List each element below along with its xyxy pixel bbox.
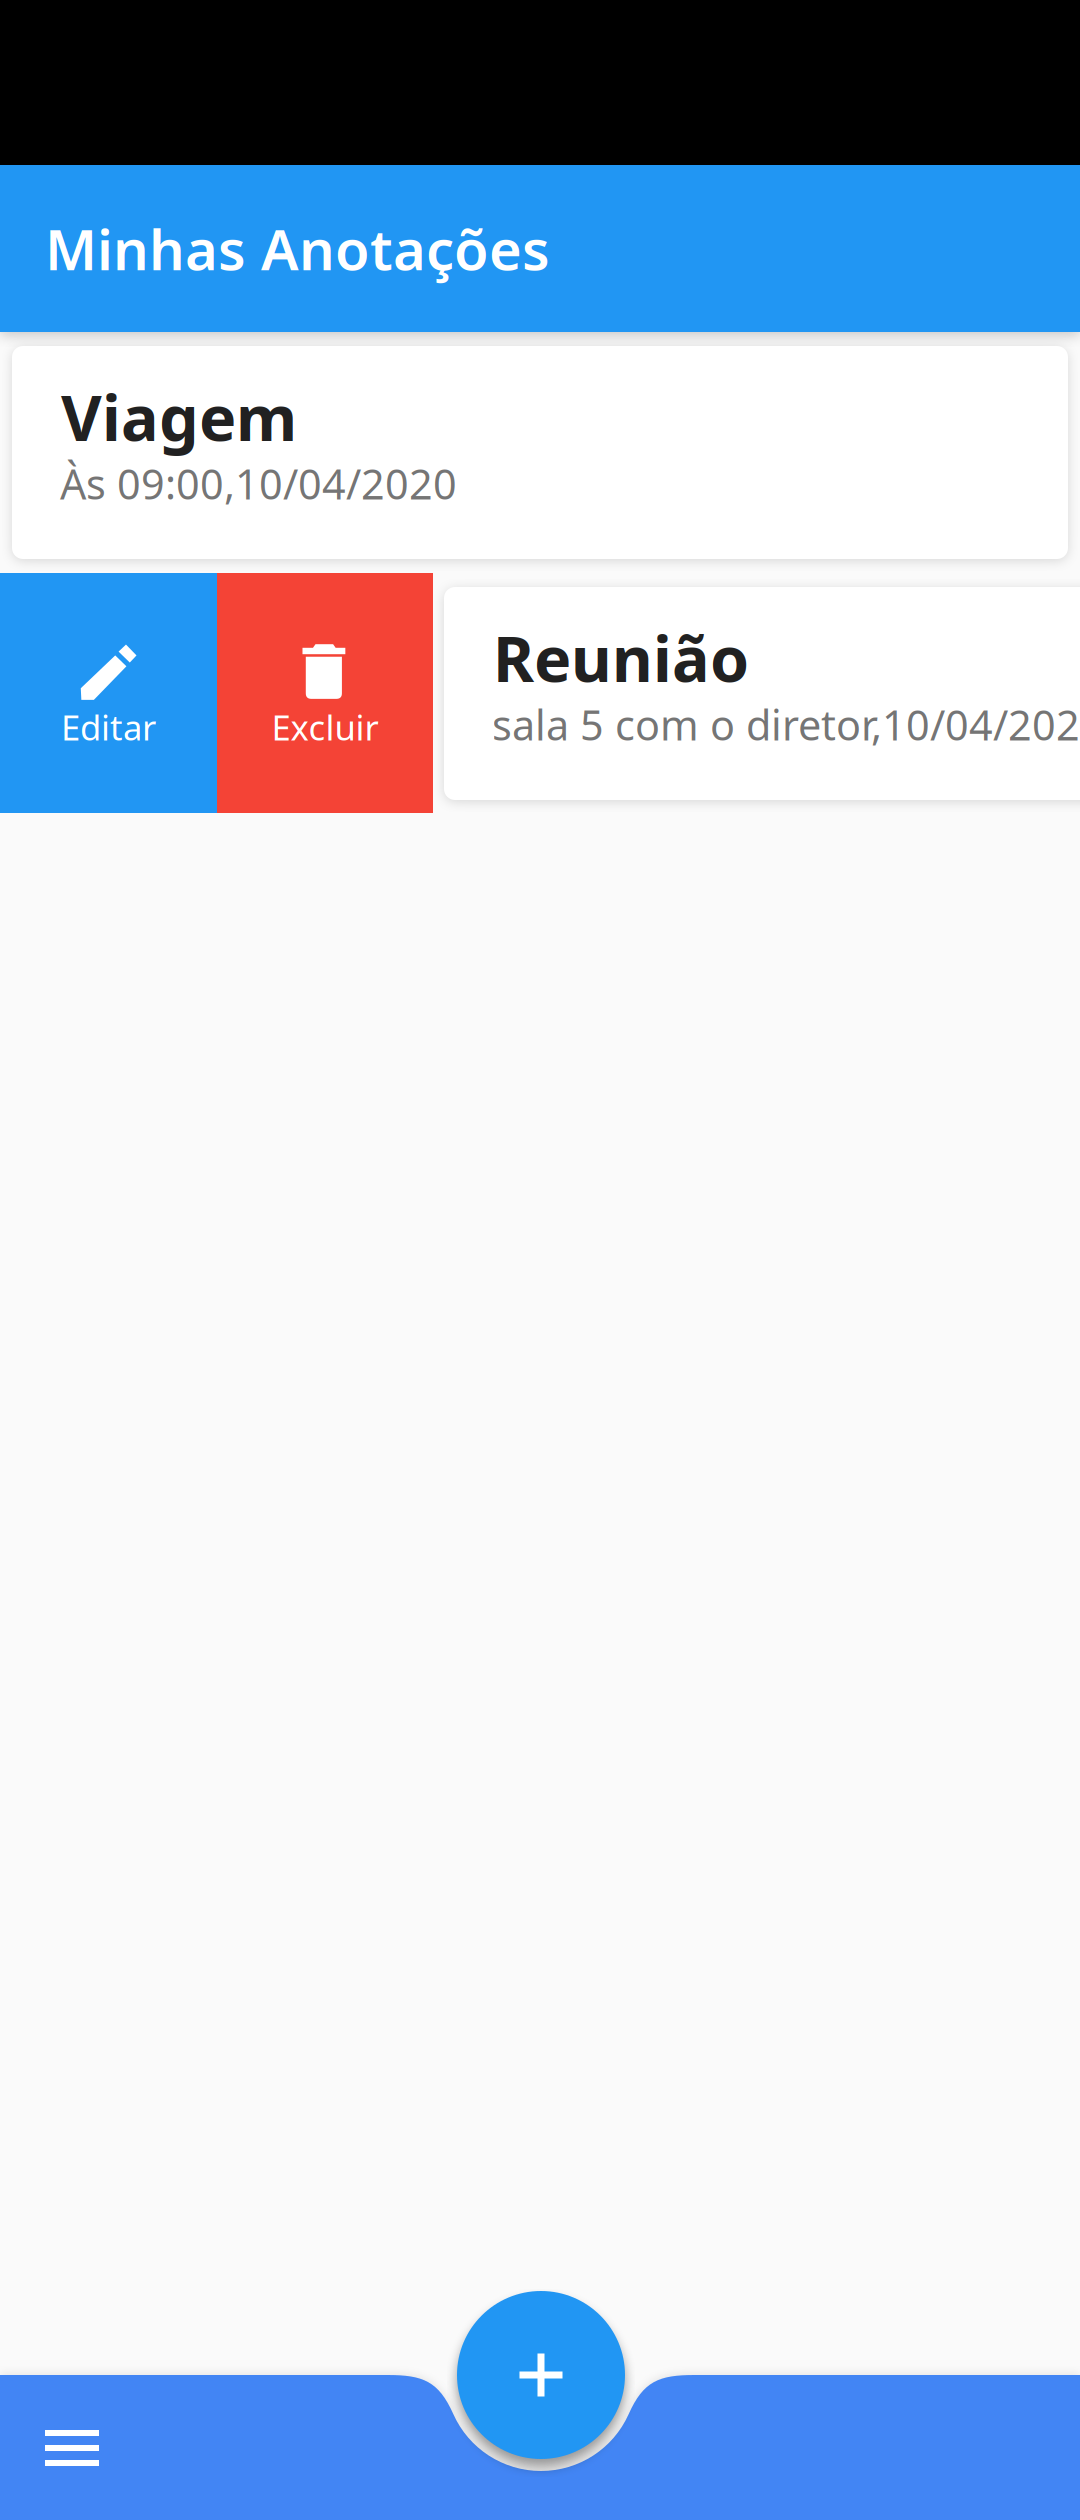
staticText: Às 09:00,10/04/2020 bbox=[60, 456, 457, 511]
button[interactable]: Excluir bbox=[217, 573, 433, 813]
staticText: Excluir bbox=[271, 704, 378, 750]
staticText: Minhas Anotações bbox=[45, 211, 550, 286]
staticText: Reunião bbox=[493, 616, 749, 699]
button[interactable]: Editar bbox=[0, 573, 217, 813]
staticText: Editar bbox=[61, 704, 156, 750]
button[interactable]: Reunião bbox=[444, 587, 1080, 800]
button[interactable]: Viagem bbox=[12, 346, 1068, 559]
button[interactable]: Menu bbox=[21, 2404, 123, 2492]
staticText: Viagem bbox=[61, 375, 297, 458]
staticText: sala 5 com o diretor,10/04/2020 bbox=[492, 697, 1080, 752]
button[interactable]: Add note bbox=[457, 2291, 625, 2459]
